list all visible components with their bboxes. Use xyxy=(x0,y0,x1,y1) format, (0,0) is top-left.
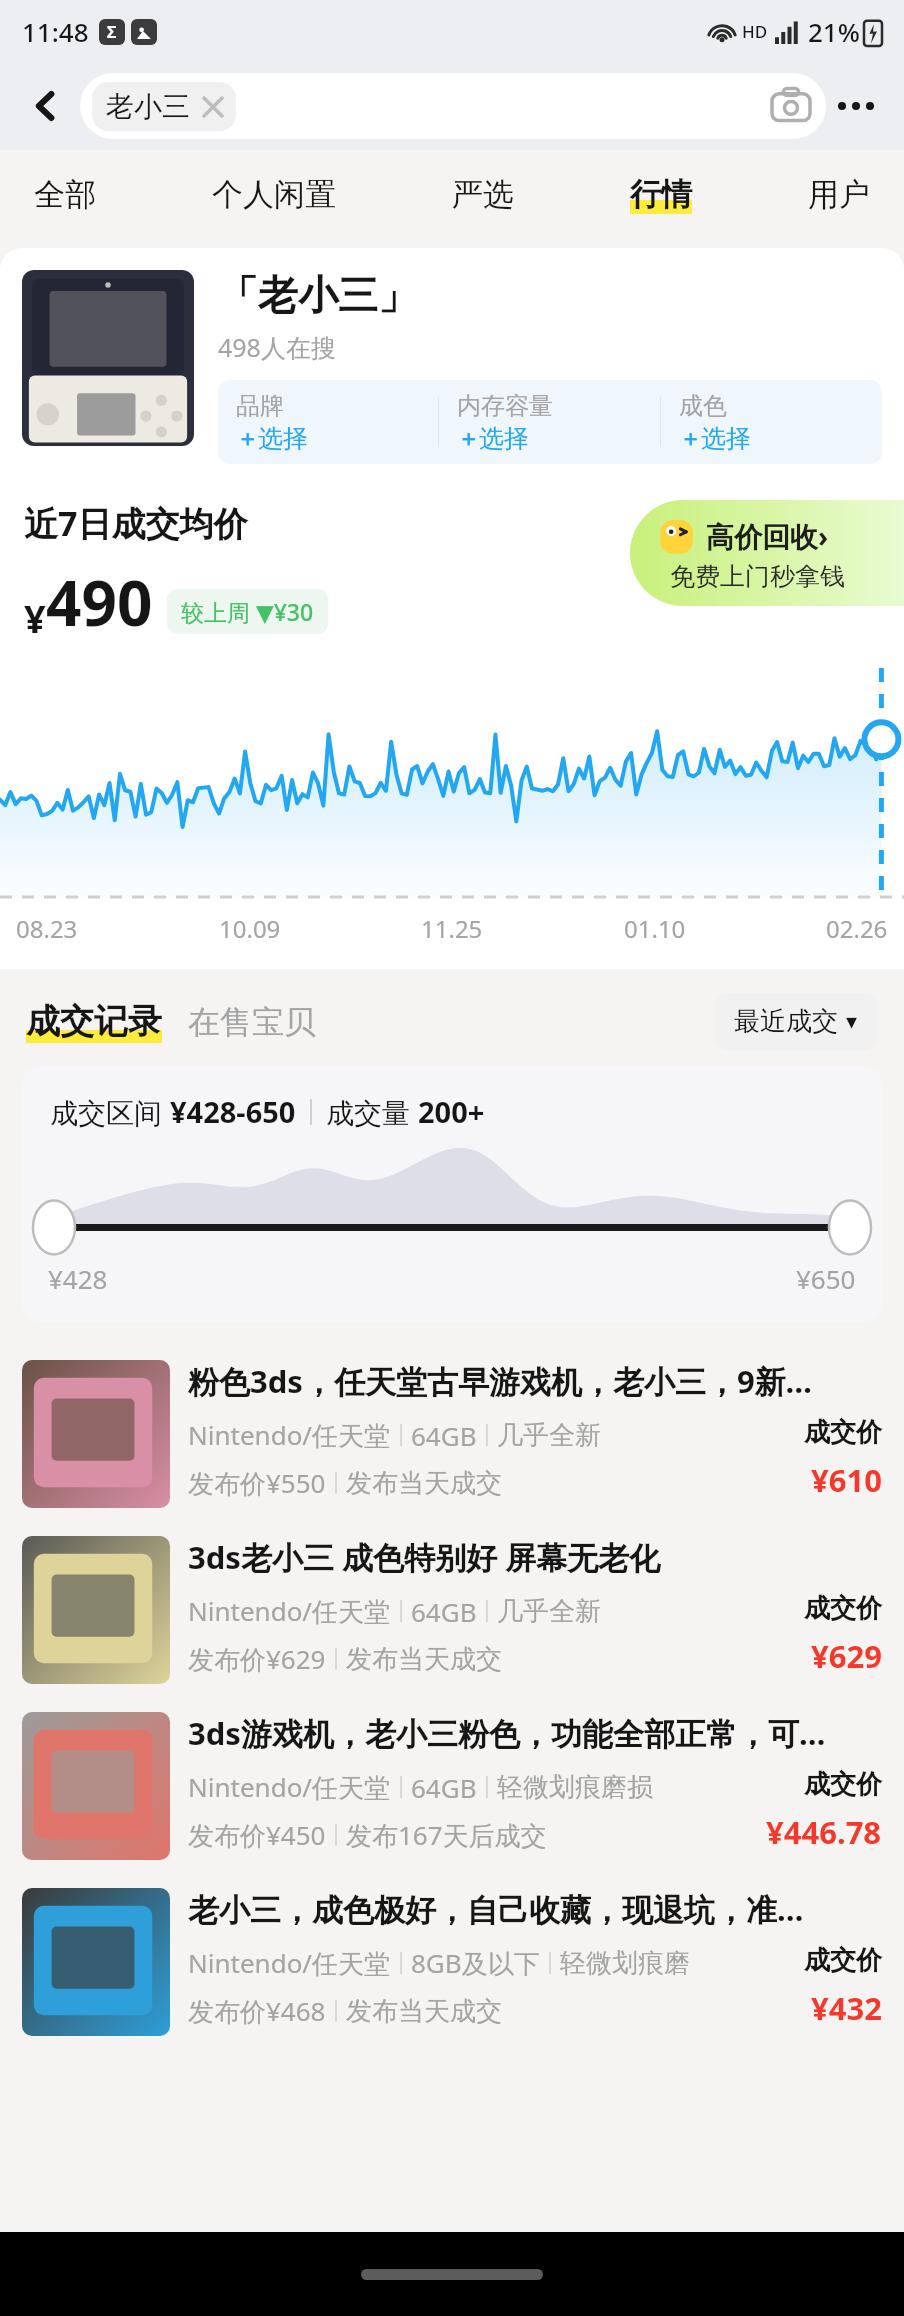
button[interactable]: 老小三 xyxy=(80,73,826,139)
staticText: 成交量 xyxy=(326,1093,418,1131)
staticText: 200+ xyxy=(418,1092,485,1131)
staticText: 免费上门秒拿钱 xyxy=(670,561,845,592)
staticText: 轻微划痕磨 xyxy=(560,1947,690,1980)
staticText: ¥ xyxy=(24,592,46,644)
button[interactable]: 严选 xyxy=(448,167,518,222)
staticText: 成交区间 xyxy=(50,1093,170,1131)
button[interactable]: 成交记录 xyxy=(26,1000,162,1043)
staticText: 几乎全新 xyxy=(497,1595,601,1628)
staticText: 10.09 xyxy=(219,912,281,945)
button[interactable]: 用户 xyxy=(804,167,874,222)
staticText: 行情 xyxy=(630,175,692,214)
button[interactable]: 更多 xyxy=(826,76,886,136)
staticText: 8GB及以下 xyxy=(411,1945,540,1981)
staticText: Nintendo/任天堂 xyxy=(188,1417,391,1453)
staticText: 成色 xyxy=(679,391,727,421)
staticText: ¥610 xyxy=(811,1459,882,1501)
button[interactable]: 个人闲置 xyxy=(208,167,340,222)
button[interactable]: 行情 xyxy=(626,167,696,222)
staticText: 发布当天成交 xyxy=(346,1995,502,2028)
staticText: 全部 xyxy=(34,175,96,214)
staticText: 3ds游戏机，老小三粉色，功能全部正常，可… xyxy=(188,1712,826,1754)
staticText: ¥650 xyxy=(796,1261,856,1296)
staticText: ¥432 xyxy=(811,1987,882,2029)
staticText: Nintendo/任天堂 xyxy=(188,1945,391,1981)
staticText: 成交价 xyxy=(804,1416,882,1449)
staticText: 发布当天成交 xyxy=(346,1643,502,1676)
staticText: 成交记录 xyxy=(26,1000,162,1043)
staticText: 轻微划痕磨损 xyxy=(497,1771,653,1804)
staticText: 严选 xyxy=(452,175,514,214)
button[interactable]: 老小三，成色极好，自己收藏，现退坑，准… xyxy=(0,1874,904,2050)
staticText: 成交价 xyxy=(804,1768,882,1801)
staticText: ¥446.78 xyxy=(766,1811,882,1853)
staticText: 近7日成交均价 xyxy=(24,500,248,546)
staticText: 发布当天成交 xyxy=(346,1467,502,1500)
staticText: 较上周 ▼¥30 xyxy=(181,596,314,627)
staticText: 11.25 xyxy=(421,912,483,945)
button[interactable]: 3ds游戏机，老小三粉色，功能全部正常，可… xyxy=(0,1698,904,1874)
staticText: 品牌 xyxy=(236,391,284,421)
staticText: 发布价¥450 xyxy=(188,1817,326,1853)
button[interactable]: 品牌 xyxy=(218,380,438,464)
staticText: 选择 xyxy=(258,423,308,454)
staticText: 高价回收› xyxy=(706,517,829,555)
staticText: 内存容量 xyxy=(457,391,553,421)
staticText: 498人在搜 xyxy=(218,330,336,364)
staticText: 490 xyxy=(46,560,153,644)
button[interactable]: 高价回收› xyxy=(630,500,904,606)
button[interactable]: 返回 xyxy=(18,78,74,134)
staticText: HD xyxy=(742,20,768,43)
button[interactable] xyxy=(22,270,194,446)
staticText: 发布价¥629 xyxy=(188,1641,326,1677)
button[interactable]: 粉色3ds，任天堂古早游戏机，老小三，9新… xyxy=(0,1346,904,1522)
button[interactable]: 3ds老小三 成色特别好 屏幕无老化 xyxy=(0,1522,904,1698)
staticText: 08.23 xyxy=(16,912,78,945)
button[interactable]: 在售宝贝 xyxy=(188,1002,316,1042)
staticText: 用户 xyxy=(808,175,870,214)
staticText: 64GB xyxy=(411,1770,477,1805)
staticText: 选择 xyxy=(479,423,529,454)
staticText: 老小三，成色极好，自己收藏，现退坑，准… xyxy=(188,1888,804,1930)
staticText: 发布167天后成交 xyxy=(346,1817,547,1853)
staticText: ¥428-650 xyxy=(170,1092,296,1131)
button[interactable]: 内存容量 xyxy=(439,380,660,464)
staticText: 个人闲置 xyxy=(212,175,336,214)
staticText: 几乎全新 xyxy=(497,1419,601,1452)
staticText: Nintendo/任天堂 xyxy=(188,1593,391,1629)
staticText: ¥428 xyxy=(48,1261,108,1296)
staticText: 老小三 xyxy=(106,89,190,124)
button[interactable]: 成色 xyxy=(661,380,882,464)
staticText: 21% xyxy=(808,14,860,49)
staticText: 最近成交 xyxy=(734,1005,838,1038)
staticText: ＋ xyxy=(679,425,701,453)
staticText: Nintendo/任天堂 xyxy=(188,1769,391,1805)
staticText: 在售宝贝 xyxy=(188,1002,316,1042)
staticText: 「老小三」 xyxy=(218,270,418,320)
staticText: 01.10 xyxy=(624,912,686,945)
staticText: 粉色3ds，任天堂古早游戏机，老小三，9新… xyxy=(188,1360,813,1402)
staticText: ＋ xyxy=(236,425,258,453)
staticText: 64GB xyxy=(411,1418,477,1453)
staticText: 11:48 xyxy=(22,14,89,49)
button[interactable]: 全部 xyxy=(30,167,100,222)
staticText: Σ xyxy=(107,21,117,43)
staticText: 发布价¥550 xyxy=(188,1465,326,1501)
staticText: 成交价 xyxy=(804,1944,882,1977)
button[interactable]: 最近成交 xyxy=(714,993,878,1050)
staticText: 02.26 xyxy=(826,912,888,945)
staticText: 成交价 xyxy=(804,1592,882,1625)
button[interactable]: 拍照搜索 xyxy=(768,83,814,129)
staticText: 选择 xyxy=(701,423,751,454)
staticText: 64GB xyxy=(411,1594,477,1629)
staticText: 3ds老小三 成色特别好 屏幕无老化 xyxy=(188,1536,661,1578)
staticText: 发布价¥468 xyxy=(188,1993,326,2029)
staticText: ▾ xyxy=(846,1009,858,1035)
staticText: ¥629 xyxy=(811,1635,882,1677)
staticText: ＋ xyxy=(457,425,479,453)
